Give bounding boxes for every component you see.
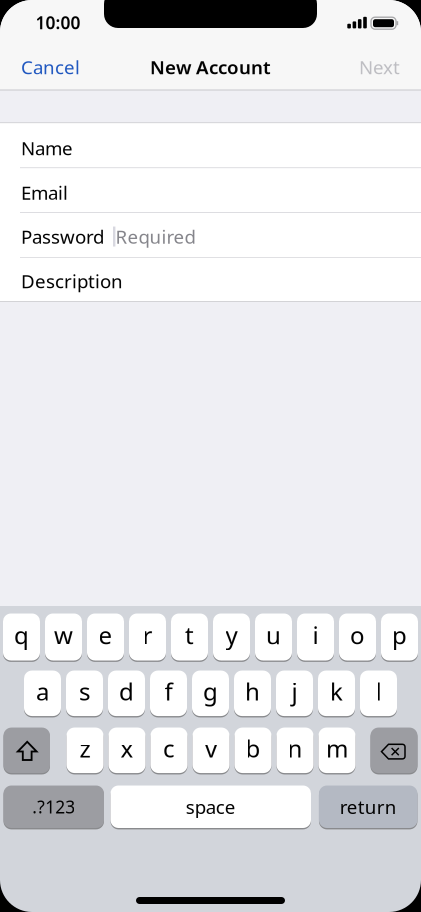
staticText: i — [312, 619, 318, 651]
staticText: space — [186, 794, 236, 819]
button[interactable]: f — [150, 669, 187, 717]
staticText: x — [120, 732, 133, 764]
button[interactable]: n — [276, 726, 313, 774]
button[interactable]: v — [192, 726, 229, 774]
staticText: j — [291, 675, 297, 707]
button[interactable]: k — [318, 669, 355, 717]
button[interactable]: return — [319, 784, 417, 829]
staticText: h — [245, 675, 260, 707]
staticText: b — [245, 732, 260, 764]
button[interactable]: .?123 — [3, 784, 104, 829]
staticText: c — [163, 732, 175, 764]
button[interactable]: q — [3, 612, 40, 661]
button[interactable]: t — [171, 612, 208, 661]
staticText: d — [119, 675, 134, 707]
staticText: Email — [21, 180, 68, 205]
button[interactable]: w — [45, 612, 82, 661]
button[interactable]: z — [66, 726, 103, 774]
staticText: Next — [359, 55, 400, 79]
button[interactable]: a — [24, 669, 61, 717]
button[interactable]: b — [234, 726, 271, 774]
staticText: n — [287, 732, 302, 764]
button[interactable]: d — [108, 669, 145, 717]
button[interactable]: Next — [301, 47, 421, 87]
staticText: q — [14, 619, 29, 651]
staticText: y — [225, 619, 237, 651]
staticText: t — [185, 619, 194, 651]
staticText: Password — [21, 224, 104, 249]
staticText: .?123 — [32, 795, 75, 818]
staticText: Name — [21, 136, 73, 160]
button[interactable]: Cancel — [0, 47, 120, 87]
staticText: z — [79, 732, 90, 764]
staticText: m — [326, 732, 348, 764]
button[interactable]: i — [297, 612, 334, 661]
staticText: r — [142, 619, 152, 651]
staticText: return — [340, 794, 397, 819]
staticText: Required — [115, 224, 195, 249]
staticText: o — [350, 619, 365, 651]
staticText: w — [54, 619, 73, 651]
button[interactable]: m — [318, 726, 355, 774]
button[interactable]: s — [66, 669, 103, 717]
button[interactable]: y — [213, 612, 250, 661]
button[interactable]: j — [276, 669, 313, 717]
button[interactable]: x — [108, 726, 145, 774]
staticText: g — [203, 675, 218, 707]
staticText: s — [79, 675, 90, 707]
button[interactable]: e — [87, 612, 124, 661]
button[interactable]: l — [360, 669, 397, 717]
staticText: u — [266, 619, 281, 651]
button[interactable]: r — [129, 612, 166, 661]
staticText: v — [205, 732, 217, 764]
staticText: p — [392, 619, 407, 651]
staticText: l — [375, 675, 381, 707]
button[interactable]: c — [150, 726, 187, 774]
staticText: New Account — [150, 55, 271, 79]
button[interactable] — [3, 726, 50, 774]
staticText: k — [330, 675, 343, 707]
staticText: Description — [21, 269, 123, 293]
button[interactable]: o — [339, 612, 376, 661]
staticText: e — [98, 619, 112, 651]
button[interactable]: Password — [0, 214, 421, 259]
button[interactable]: h — [234, 669, 271, 717]
button[interactable]: Description — [0, 259, 421, 303]
staticText: Cancel — [21, 55, 80, 79]
staticText: f — [164, 675, 172, 707]
button[interactable]: Name — [0, 126, 421, 170]
button[interactable]: u — [255, 612, 292, 661]
button[interactable]: g — [192, 669, 229, 717]
button[interactable]: Email — [0, 170, 421, 215]
staticText: a — [36, 675, 49, 707]
button[interactable]: space — [110, 784, 311, 829]
button[interactable]: p — [381, 612, 418, 661]
button[interactable] — [370, 726, 417, 774]
staticText: 10:00 — [35, 11, 80, 34]
